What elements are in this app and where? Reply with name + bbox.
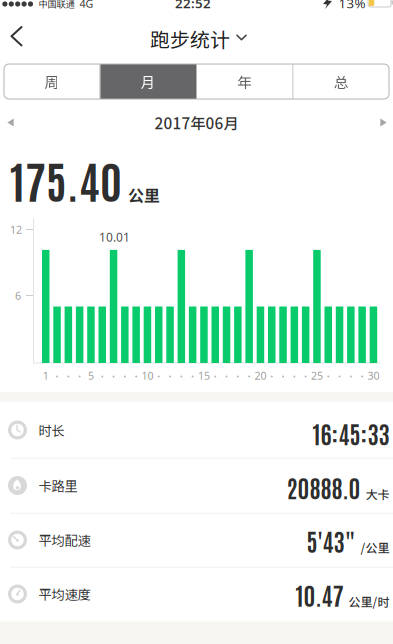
staticText: 公里 [128,183,160,206]
staticText: 12 [10,222,22,237]
staticText: 10.01 [99,229,130,245]
staticText: 周 [44,71,59,92]
staticText: 4G [79,0,93,11]
staticText: 13% [338,0,365,12]
staticText: 10.47 [295,579,343,610]
staticText: 22:52 [175,0,211,12]
button[interactable]: 周 [4,64,99,99]
staticText: 16:45:33 [312,417,389,449]
button[interactable]: Previous month [0,107,20,137]
staticText: 跑步统计 [150,24,230,53]
button[interactable]: 卡路里 [0,458,393,513]
button[interactable]: 月 [100,64,196,99]
button[interactable]: 平均速度 [0,567,393,621]
button[interactable]: 总 [293,64,389,99]
staticText: 30 [367,368,379,383]
staticText: 平均配速 [38,530,90,550]
button[interactable]: 平均配速 [0,513,393,567]
staticText: 6 [15,288,21,303]
button[interactable]: 跑步统计 [150,24,246,53]
staticText: 20888.0 [286,471,360,502]
staticText: 15 [198,368,210,383]
staticText: 总 [334,71,349,92]
staticText: 平均速度 [38,584,90,604]
staticText: 大卡 [365,485,389,503]
staticText: /公里 [360,539,389,556]
staticText: 175.40 [10,150,122,208]
staticText: 25 [311,368,323,383]
staticText: 月 [141,71,156,92]
staticText: 10 [141,368,153,383]
staticText: 1 [43,368,49,383]
staticText: 中国联通 [38,0,74,10]
staticText: 20 [254,368,266,383]
staticText: 5 [88,368,94,383]
button[interactable]: 年 [197,64,292,99]
staticText: 卡路里 [38,476,77,495]
staticText: 2017年06月 [154,111,238,134]
staticText: 公里/时 [348,593,389,610]
button[interactable]: Next month [373,107,393,137]
button[interactable]: Back [0,0,34,58]
staticText: 时长 [38,420,64,440]
staticText: 年 [237,71,252,92]
button[interactable]: 时长 [0,402,393,458]
staticText: 5'43" [306,525,355,556]
